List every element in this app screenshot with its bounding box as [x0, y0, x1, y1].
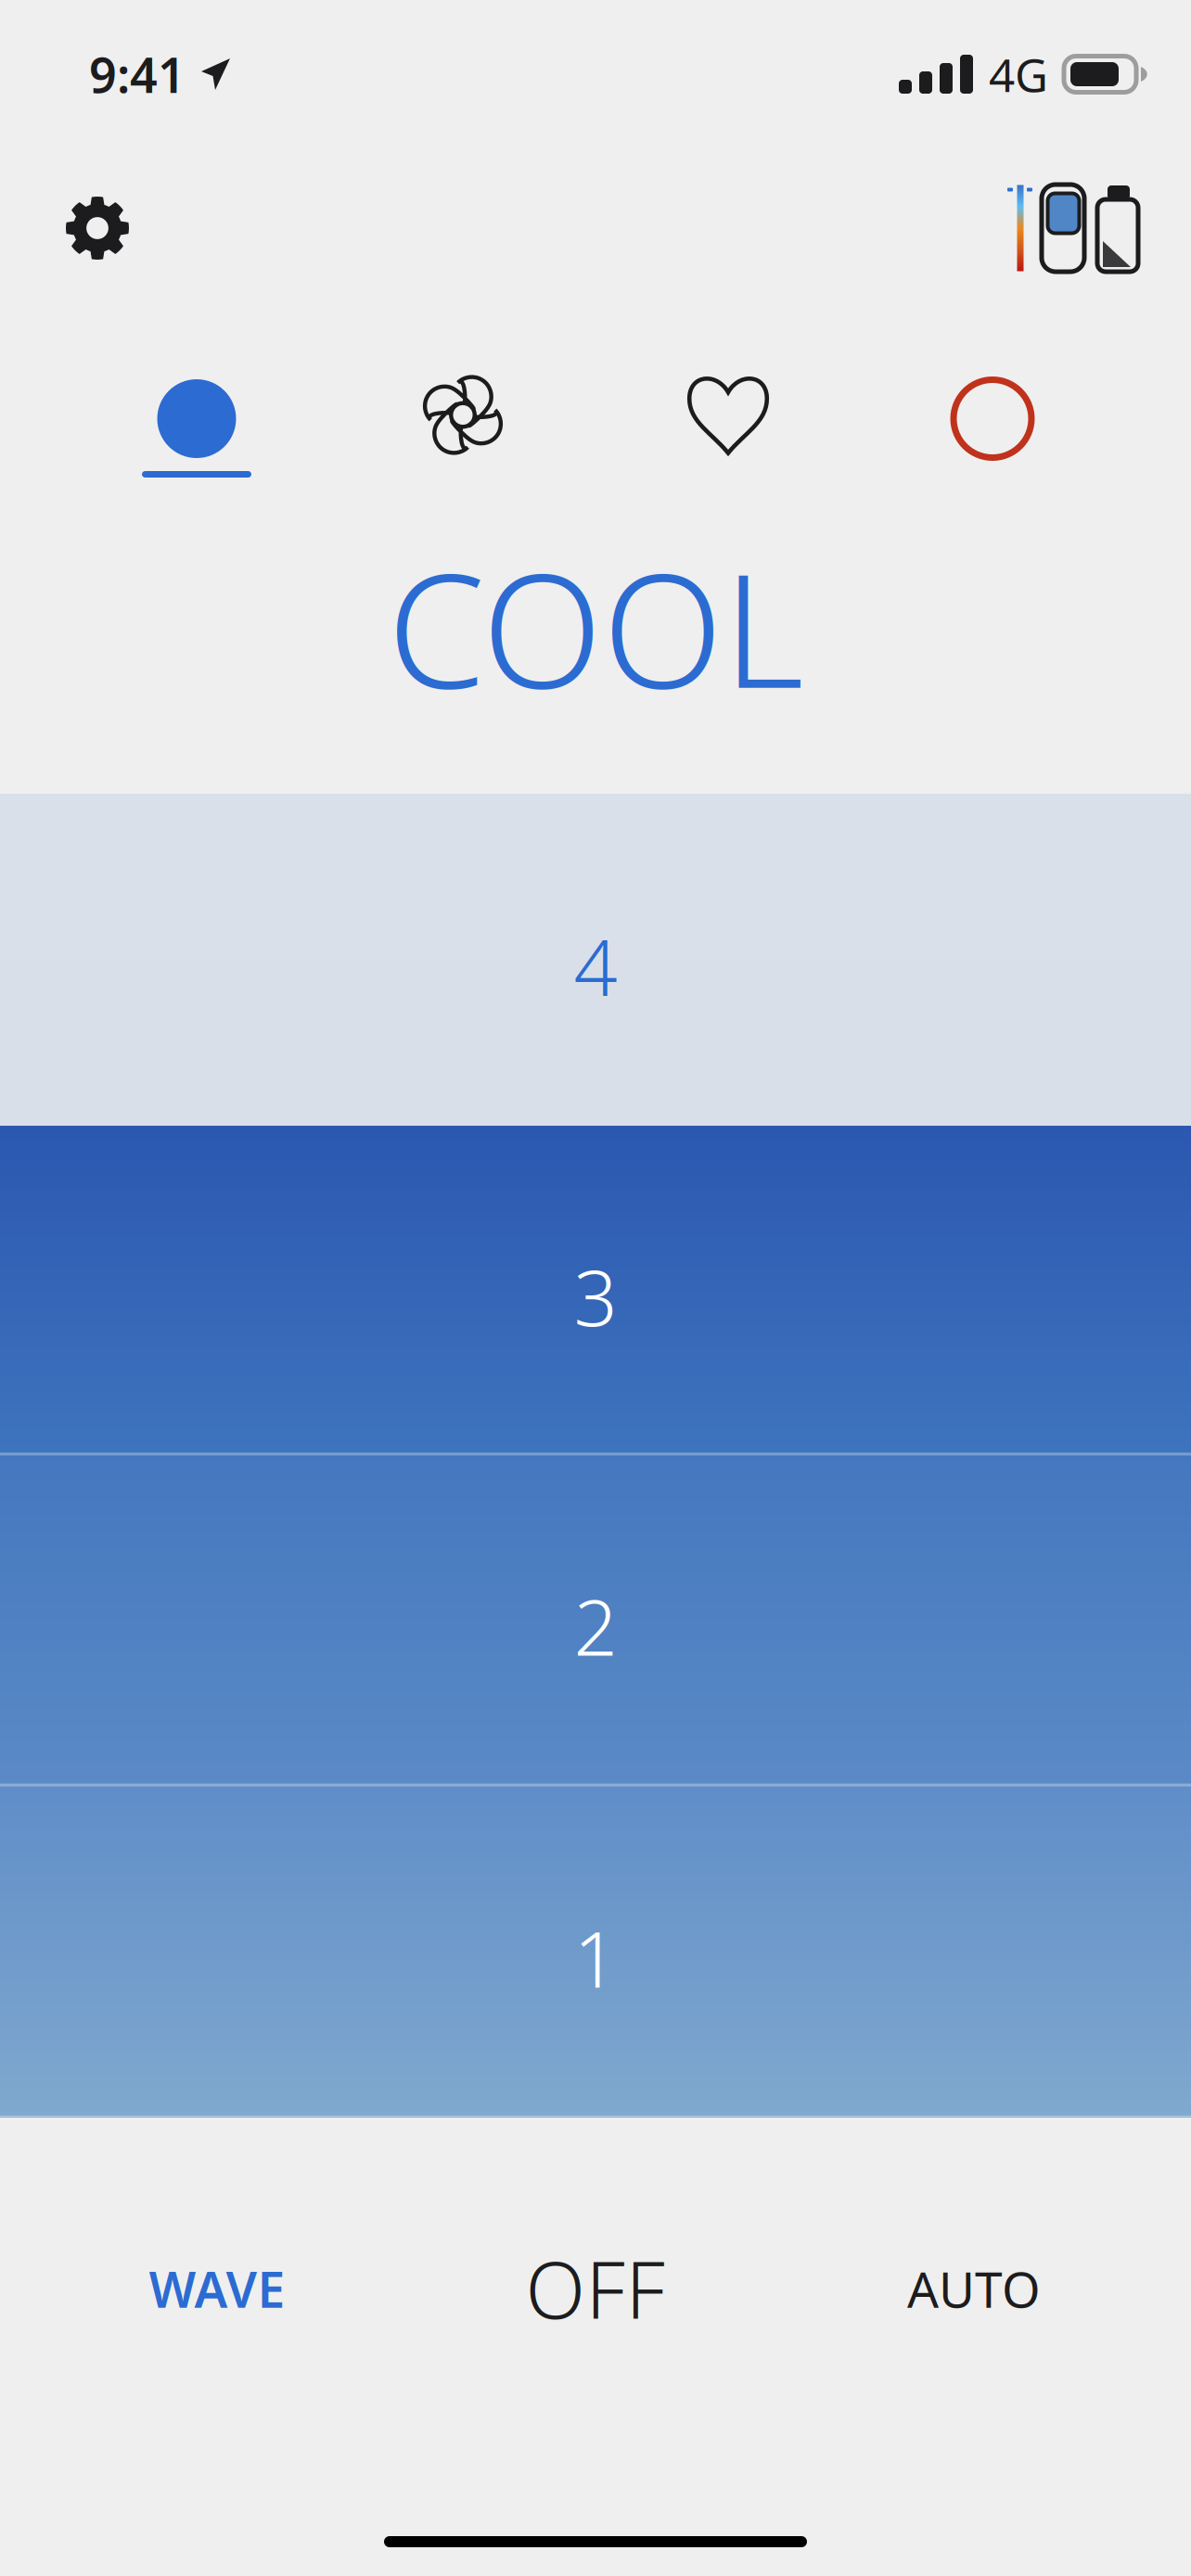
button[interactable]: Comfort mode: [608, 352, 849, 491]
button[interactable]: Fan mode: [342, 355, 583, 494]
staticText: WAVE: [149, 2256, 285, 2321]
staticText: 1: [574, 1907, 617, 2009]
button[interactable]: 3: [0, 1126, 1191, 1454]
staticText: 4G: [989, 44, 1048, 105]
staticText: OFF: [525, 2237, 666, 2340]
button[interactable]: WAVE: [19, 2219, 416, 2358]
staticText: 3: [574, 1245, 617, 1347]
button[interactable]: OFF: [397, 2219, 794, 2358]
button[interactable]: Power: [872, 359, 1113, 498]
button[interactable]: Settings: [43, 173, 152, 283]
button[interactable]: AUTO: [775, 2219, 1172, 2358]
staticText: COOL: [387, 523, 804, 731]
staticText: 2: [574, 1575, 617, 1677]
button[interactable]: 2: [0, 1454, 1191, 1785]
button[interactable]: 4: [0, 794, 1191, 1126]
staticText: AUTO: [907, 2256, 1041, 2321]
button[interactable]: Cool mode: [76, 359, 317, 498]
button[interactable]: 1: [0, 1785, 1191, 2118]
staticText: 4: [574, 915, 617, 1017]
staticText: 9:41: [89, 42, 186, 106]
